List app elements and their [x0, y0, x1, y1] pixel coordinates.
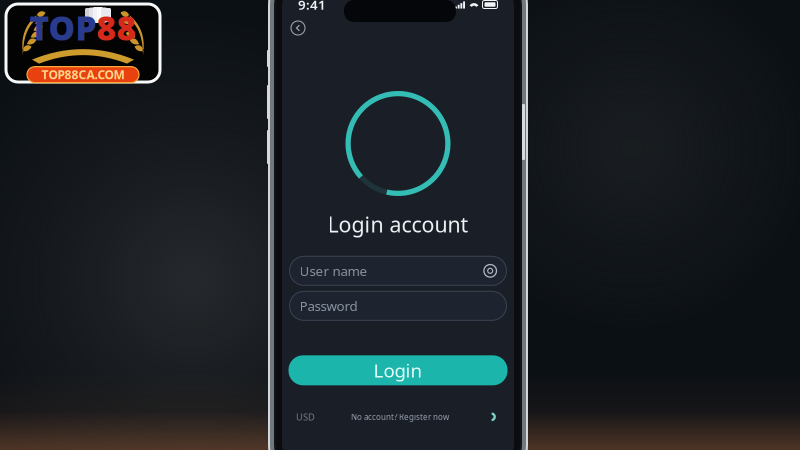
button[interactable]: Login	[288, 355, 507, 385]
staticText: Password	[299, 297, 357, 315]
button[interactable]: Back	[287, 17, 309, 39]
staticText: No account? Register now	[351, 411, 449, 422]
staticText: TOP88CA.COM	[41, 67, 124, 83]
staticText: Login	[373, 358, 422, 383]
button[interactable]: No account? Register now	[351, 411, 449, 422]
button[interactable]: USD	[296, 411, 315, 423]
staticText: Login account	[327, 210, 468, 238]
staticText: 88	[96, 5, 136, 50]
staticText: TOP	[29, 5, 96, 50]
staticText: USD	[296, 411, 315, 423]
button[interactable]: Continue	[485, 410, 498, 423]
staticText: User name	[299, 262, 367, 280]
staticText: 9:41	[298, 0, 326, 13]
